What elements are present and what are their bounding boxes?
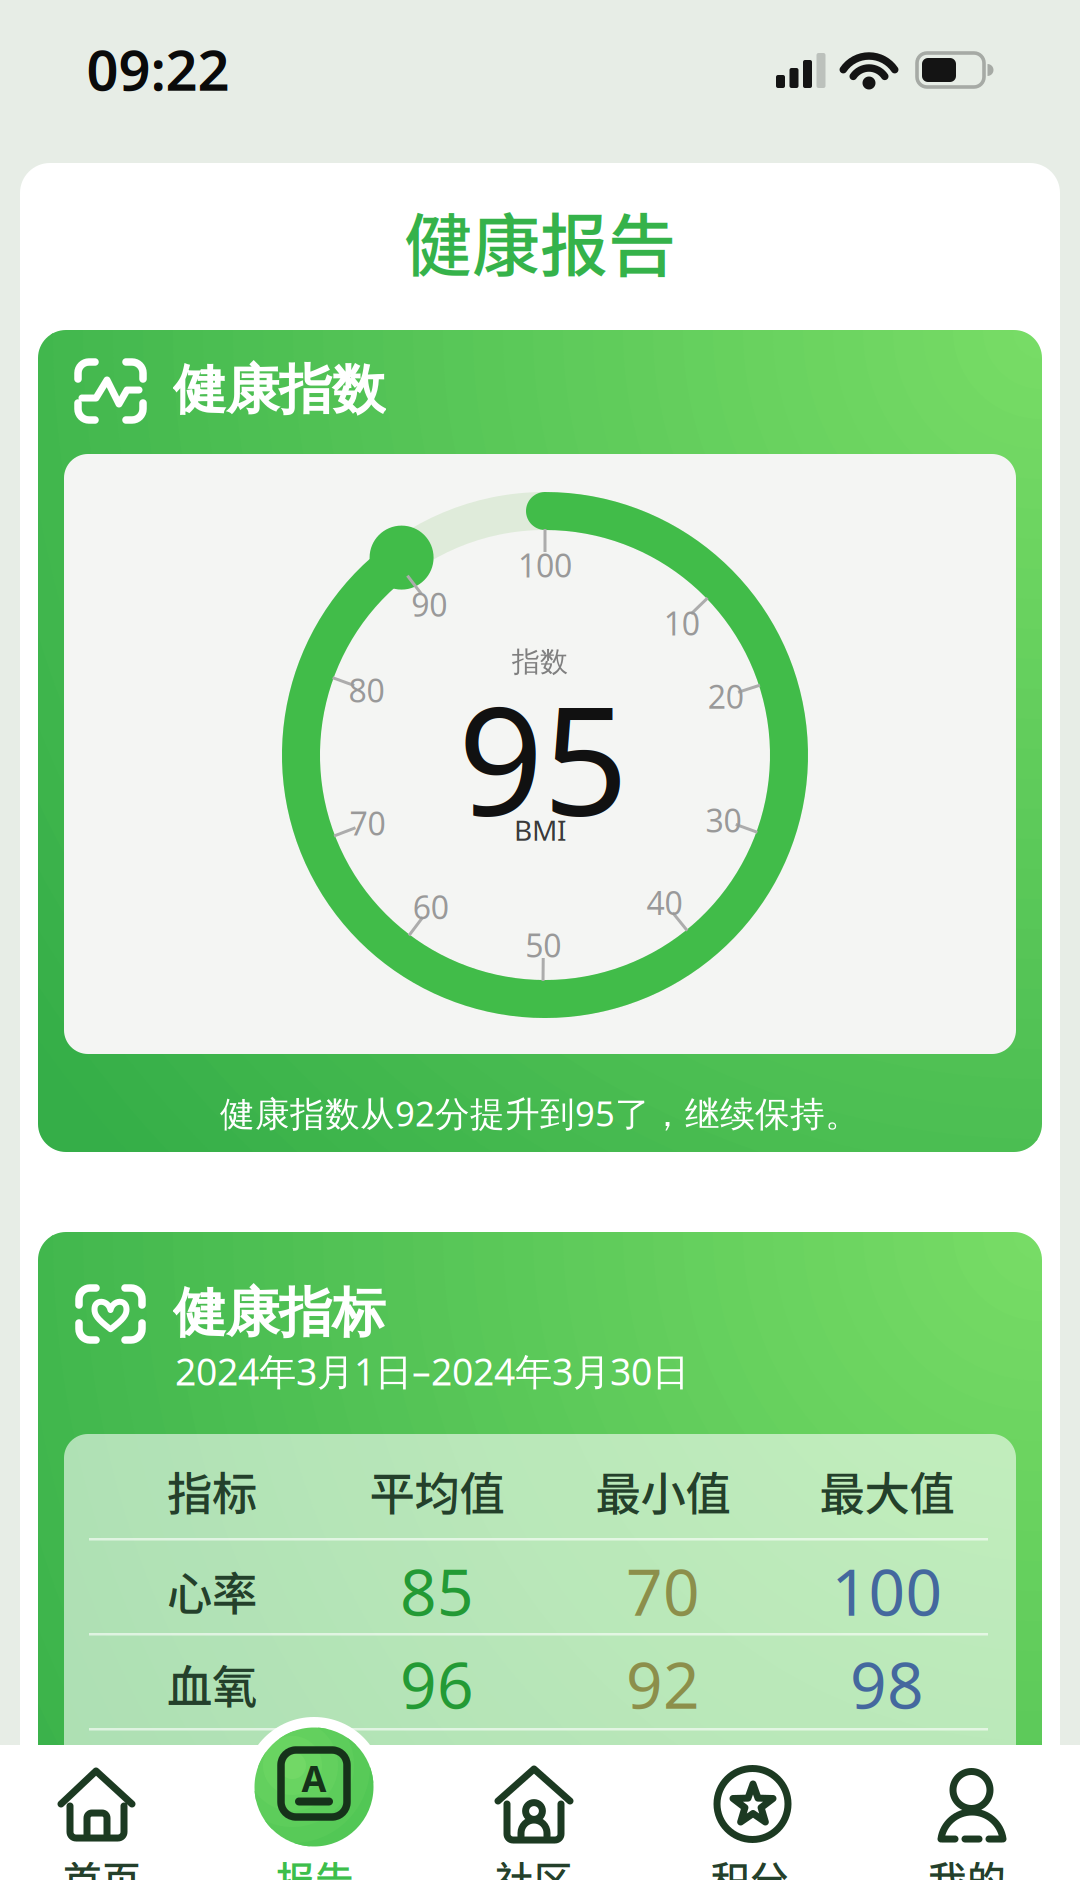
- staticText: 我的: [928, 1850, 1006, 1880]
- staticText: 健康指数从92分提升到95了，继续保持。: [220, 1090, 860, 1136]
- staticText: 70: [626, 1548, 700, 1633]
- staticText: 40: [647, 881, 683, 924]
- button[interactable]: 首页: [12, 1745, 182, 1880]
- staticText: 95: [458, 659, 628, 857]
- staticText: 最小值: [595, 1458, 730, 1524]
- staticText: 30: [705, 799, 741, 841]
- staticText: 社区: [495, 1850, 573, 1880]
- staticText: 2024年3月1日–2024年3月30日: [175, 1346, 689, 1396]
- button[interactable]: 社区: [449, 1745, 619, 1880]
- staticText: 09:22: [86, 32, 229, 106]
- staticText: 积分: [711, 1850, 789, 1880]
- staticText: 指标: [167, 1458, 257, 1524]
- staticText: 98: [850, 1641, 924, 1726]
- staticText: 20: [708, 675, 744, 717]
- staticText: 100: [831, 1548, 942, 1633]
- staticText: 60: [413, 885, 449, 928]
- staticText: 报告: [276, 1850, 354, 1880]
- staticText: 血氧: [167, 1651, 257, 1717]
- staticText: 80: [348, 669, 384, 711]
- staticText: 平均值: [369, 1458, 504, 1524]
- staticText: 10: [664, 602, 700, 644]
- staticText: BMI: [514, 811, 566, 849]
- staticText: 健康指数: [173, 357, 385, 423]
- staticText: 90: [411, 583, 447, 625]
- staticText: A: [301, 1754, 326, 1802]
- staticText: 首页: [63, 1850, 141, 1880]
- button[interactable]: 我的: [882, 1745, 1052, 1880]
- staticText: 50: [525, 924, 561, 966]
- staticText: 心率: [167, 1558, 257, 1624]
- staticText: 健康指标: [173, 1280, 385, 1346]
- staticText: 92: [626, 1641, 700, 1726]
- staticText: 100: [518, 544, 572, 586]
- button[interactable]: 积分: [665, 1745, 835, 1880]
- staticText: 健康报告: [404, 192, 676, 290]
- button[interactable]: A: [244, 1717, 384, 1880]
- staticText: 指数: [512, 645, 568, 679]
- staticText: 85: [400, 1548, 474, 1633]
- staticText: 70: [350, 802, 386, 844]
- staticText: 最大值: [819, 1458, 954, 1524]
- staticText: 96: [400, 1641, 474, 1726]
